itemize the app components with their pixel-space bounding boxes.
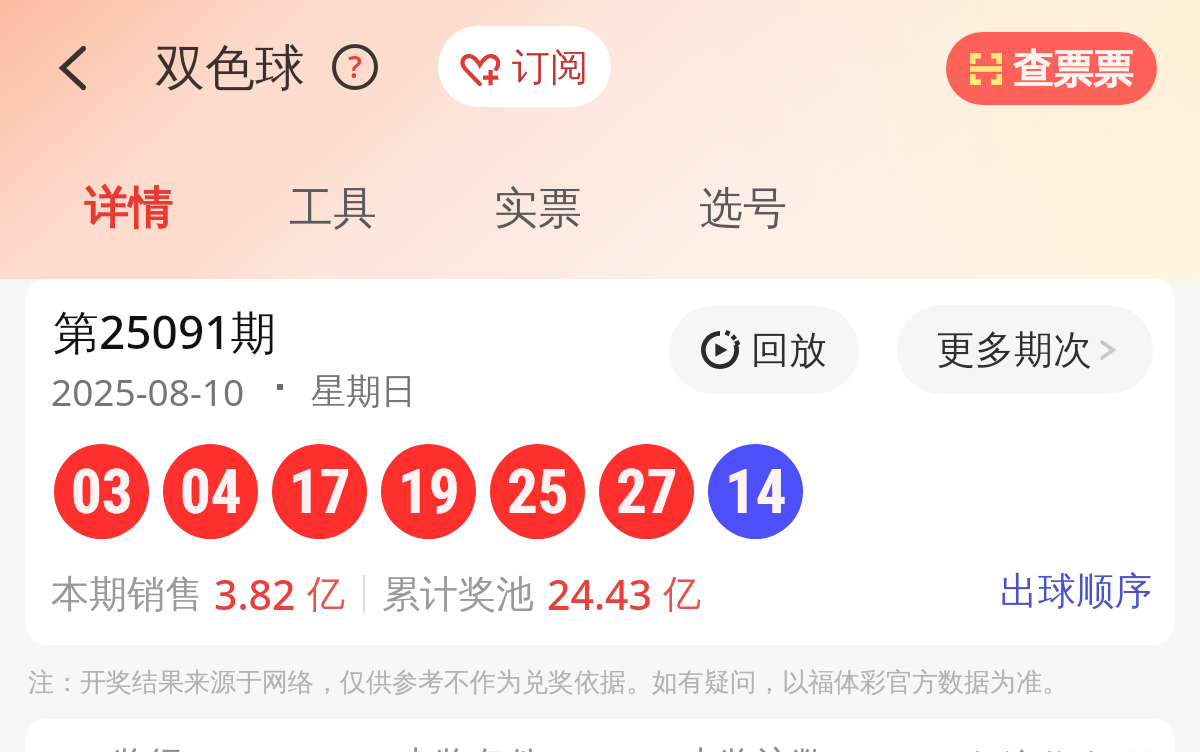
staticText: 03 xyxy=(71,456,133,527)
staticText: 详情 xyxy=(84,181,172,236)
staticText: 出球顺序 xyxy=(1000,567,1152,615)
staticText: 每注奖金(元) xyxy=(966,742,1168,752)
staticText: 工具 xyxy=(289,181,377,236)
button[interactable]: Back xyxy=(38,33,108,103)
staticText: 查票票 xyxy=(1013,44,1133,94)
staticText: 中奖条件 xyxy=(399,742,543,752)
staticText: 2025-08-10 xyxy=(51,366,245,416)
staticText: 亿 xyxy=(307,570,345,618)
staticText: 24.43 xyxy=(547,566,652,622)
button[interactable]: 订阅 xyxy=(438,26,611,107)
staticText: 27 xyxy=(616,456,678,527)
button[interactable]: 更多期次 xyxy=(897,305,1153,394)
staticText: 14 xyxy=(725,456,787,527)
staticText: 实票 xyxy=(494,181,582,236)
staticText: 订阅 xyxy=(512,43,588,91)
staticText: 奖级 xyxy=(113,742,185,752)
staticText: 注：开奖结果来源于网络，仅供参考不作为兑奖依据。如有疑问，以福体彩官方数据为准。 xyxy=(28,666,1068,699)
staticText: 第25091期 xyxy=(53,300,277,363)
staticText: ? xyxy=(348,46,362,87)
staticText: 更多期次 xyxy=(936,325,1092,374)
button[interactable]: 工具 xyxy=(268,165,398,251)
staticText: 双色球 xyxy=(155,37,305,100)
staticText: 04 xyxy=(180,456,242,527)
button[interactable]: Help xyxy=(332,44,378,90)
staticText: 星期日 xyxy=(311,369,416,413)
button[interactable]: 实票 xyxy=(473,165,603,251)
staticText: 3.82 xyxy=(214,566,296,622)
staticText: 17 xyxy=(289,456,351,527)
staticText: 亿 xyxy=(663,570,701,618)
button[interactable]: 回放 xyxy=(669,306,859,394)
staticText: 中奖注数 xyxy=(684,742,828,752)
staticText: 19 xyxy=(398,456,460,527)
staticText: 选号 xyxy=(699,181,787,236)
button[interactable]: 出球顺序 xyxy=(992,559,1160,623)
button[interactable]: 详情 xyxy=(63,165,193,251)
staticText: 25 xyxy=(507,456,569,527)
staticText: 本期销售 xyxy=(51,570,203,618)
button[interactable]: 查票票 xyxy=(946,32,1157,105)
staticText: 回放 xyxy=(751,326,827,374)
staticText: 累计奖池 xyxy=(382,570,534,618)
button[interactable]: 选号 xyxy=(678,165,808,251)
